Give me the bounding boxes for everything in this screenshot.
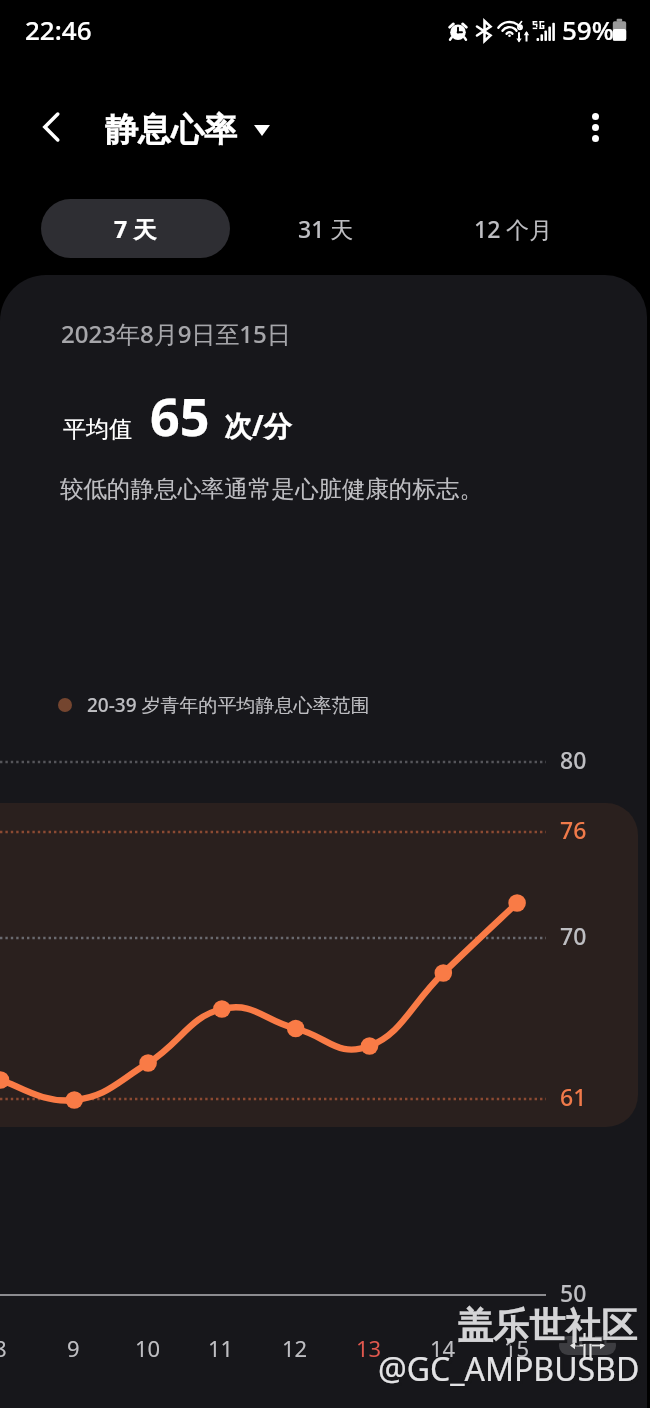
- staticText: 盖乐世社区: [457, 1303, 637, 1348]
- staticText: 静息心率: [105, 109, 237, 151]
- staticText: 70: [560, 920, 587, 951]
- staticText: @GC_AMPBUSBD: [378, 1347, 640, 1391]
- button[interactable]: 12 个月: [443, 199, 583, 258]
- staticText: 76: [560, 814, 587, 845]
- button[interactable]: 31 天: [256, 199, 396, 258]
- staticText: 50: [560, 1277, 587, 1308]
- staticText: 盖乐世社区: [460, 1306, 640, 1351]
- staticText: 2023年8月9日至15日: [61, 317, 291, 350]
- staticText: 65: [150, 380, 210, 451]
- staticText: 59%: [562, 12, 614, 47]
- staticText: 22:46: [25, 12, 92, 47]
- staticText: 20-39 岁青年的平均静息心率范围: [87, 692, 370, 718]
- staticText: 80: [560, 744, 587, 775]
- staticText: 61: [560, 1081, 587, 1112]
- button[interactable]: More options: [569, 101, 621, 153]
- staticText: 11: [208, 1333, 234, 1363]
- button[interactable]: Resize window: [559, 1336, 616, 1355]
- staticText: 9: [67, 1333, 80, 1363]
- button[interactable]: 7 天: [41, 199, 230, 258]
- staticText: @GC_AMPBUSBD: [381, 1350, 643, 1394]
- staticText: 15: [504, 1333, 530, 1363]
- staticText: 次/分: [224, 406, 292, 444]
- button[interactable]: Back: [23, 98, 81, 156]
- staticText: 12: [282, 1333, 308, 1363]
- staticText: 平均值: [63, 415, 132, 444]
- staticText: 31 天: [298, 213, 354, 244]
- staticText: 较低的静息心率通常是心脏健康的标志。: [60, 474, 483, 504]
- staticText: 14: [430, 1333, 456, 1363]
- staticText: 10: [135, 1333, 161, 1363]
- staticText: 13: [356, 1333, 382, 1363]
- staticText: 12 个月: [474, 213, 553, 244]
- staticText: 7 天: [114, 213, 157, 244]
- button[interactable]: 静息心率: [105, 109, 270, 151]
- staticText: 8: [0, 1333, 7, 1363]
